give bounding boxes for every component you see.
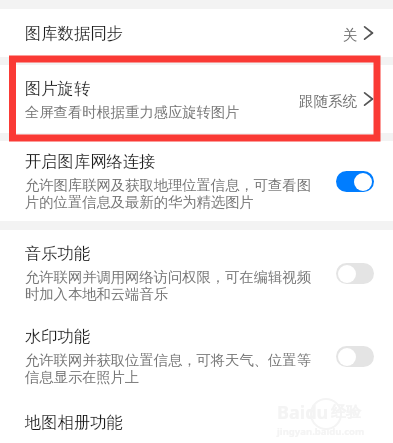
staticText: 音乐功能 (25, 243, 91, 264)
staticText: 允许图库联网及获取地理位置信息，可查看图片的位置信息及最新的华为精选图片 (25, 176, 315, 212)
button[interactable]: 图片旋转 (0, 65, 393, 133)
button[interactable]: Switch off (336, 346, 374, 367)
staticText: 图库数据同步 (25, 23, 123, 44)
staticText: 全屏查看时根据重力感应旋转图片 (25, 103, 240, 121)
button[interactable]: 水印功能 (0, 313, 393, 401)
button[interactable]: 音乐功能 (0, 230, 393, 313)
staticText: Baidu (277, 400, 329, 425)
staticText: 允许联网并获取位置信息，可将天气、位置等信息显示在照片上 (25, 351, 315, 387)
staticText: 经验 (331, 403, 361, 422)
button[interactable]: Switch off (336, 263, 374, 284)
staticText: 关 (343, 26, 358, 44)
button[interactable]: Switch on (336, 171, 374, 192)
button[interactable]: 图库数据同步 (0, 9, 393, 57)
staticText: 跟随系统 (299, 92, 358, 110)
staticText: 水印功能 (25, 326, 91, 347)
staticText: 开启图库网络连接 (25, 151, 156, 172)
button[interactable]: 地图相册功能 (0, 401, 393, 443)
staticText: 图片旋转 (25, 78, 91, 99)
staticText: jingyan.baidu.com (277, 425, 365, 438)
staticText: 地图相册功能 (25, 412, 123, 433)
staticText: 允许联网并调用网络访问权限，可在编辑视频时加入本地和云端音乐 (25, 268, 315, 304)
button[interactable]: 开启图库网络连接 (0, 141, 393, 221)
